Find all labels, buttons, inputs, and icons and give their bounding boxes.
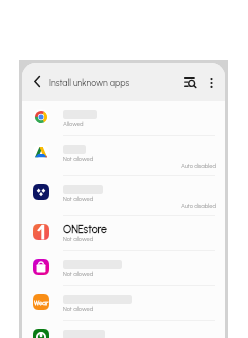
button[interactable]: More options [202, 73, 221, 92]
button[interactable]: Search [180, 73, 199, 92]
staticText: Not allowed [63, 235, 94, 242]
staticText: Auto disabled [181, 202, 216, 209]
button[interactable]: Wear [22, 286, 225, 321]
staticText: Install unknown apps [49, 78, 130, 89]
staticText: Not allowed [63, 195, 94, 202]
staticText: Not allowed [63, 155, 94, 162]
button[interactable]: ONEstore [22, 216, 225, 251]
button[interactable]: Not allowed [22, 136, 225, 176]
staticText: Auto disabled [181, 162, 216, 169]
staticText: ONEstore [63, 223, 107, 236]
button[interactable]: Not allowed [22, 251, 225, 286]
staticText: Allowed [63, 120, 84, 127]
staticText: Not allowed [63, 270, 94, 277]
button[interactable] [22, 321, 225, 338]
staticText: Not allowed [63, 305, 94, 312]
button[interactable]: Navigate up [28, 72, 46, 90]
button[interactable]: Not allowed [22, 176, 225, 216]
staticText: Wear [34, 299, 49, 306]
button[interactable]: Allowed [22, 101, 225, 136]
